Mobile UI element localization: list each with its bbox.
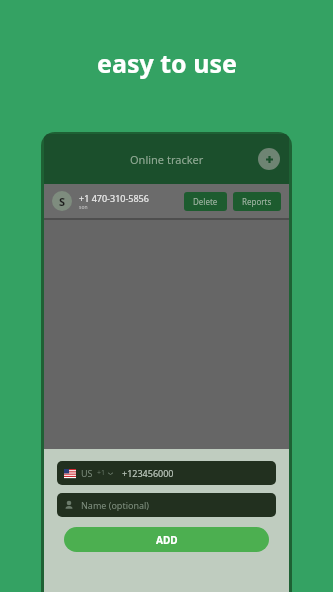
staticText: S <box>59 194 66 209</box>
staticText: +123456000 <box>122 467 174 479</box>
button[interactable]: S <box>44 184 289 218</box>
staticText: US <box>81 467 93 479</box>
button[interactable]: Name (optional) <box>57 493 276 517</box>
staticText: ADD <box>156 533 178 547</box>
button[interactable]: US <box>57 461 276 485</box>
button[interactable]: Delete <box>184 192 227 211</box>
button[interactable]: ADD <box>64 527 269 552</box>
staticText: Name (optional) <box>81 499 150 511</box>
staticText: Online tracker <box>130 152 204 167</box>
staticText: Delete <box>193 196 218 207</box>
button[interactable]: Add number <box>258 148 280 170</box>
staticText: +1 <box>97 468 106 478</box>
staticText: easy to use <box>97 46 237 80</box>
staticText: son <box>79 204 88 211</box>
staticText: +1 470-310-5856 <box>79 192 149 204</box>
button[interactable]: Reports <box>233 192 281 211</box>
staticText: Reports <box>242 196 272 207</box>
